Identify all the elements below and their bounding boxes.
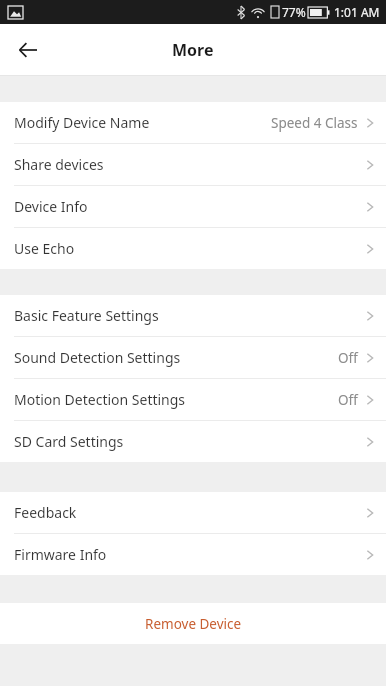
button[interactable]: Back <box>10 32 46 68</box>
button[interactable]: Basic Feature Settings <box>0 295 386 336</box>
staticText: Speed 4 Class <box>271 114 358 132</box>
button[interactable]: Feedback <box>0 492 386 533</box>
staticText: Feedback <box>14 503 77 522</box>
staticText: Motion Detection Settings <box>14 390 186 409</box>
button[interactable]: Motion Detection Settings <box>0 379 386 420</box>
staticText: 77% <box>282 4 306 20</box>
staticText: SD Card Settings <box>14 432 124 451</box>
button[interactable]: Sound Detection Settings <box>0 337 386 378</box>
staticText: Modify Device Name <box>14 113 150 132</box>
staticText: Remove Device <box>145 615 242 633</box>
staticText: Off <box>338 391 358 409</box>
button[interactable]: Modify Device Name <box>0 102 386 143</box>
staticText: Off <box>338 349 358 367</box>
button[interactable]: Share devices <box>0 144 386 185</box>
button[interactable]: Firmware Info <box>0 534 386 575</box>
staticText: Sound Detection Settings <box>14 348 181 367</box>
button[interactable]: SD Card Settings <box>0 421 386 462</box>
staticText: Device Info <box>14 197 88 216</box>
staticText: Firmware Info <box>14 545 107 564</box>
staticText: Use Echo <box>14 239 75 258</box>
staticText: Share devices <box>14 155 104 174</box>
staticText: Basic Feature Settings <box>14 306 159 325</box>
button[interactable]: Remove Device <box>0 603 386 644</box>
staticText: 1:01 AM <box>334 4 380 20</box>
button[interactable]: Use Echo <box>0 228 386 269</box>
button[interactable]: Device Info <box>0 186 386 227</box>
staticText: More <box>172 39 214 61</box>
